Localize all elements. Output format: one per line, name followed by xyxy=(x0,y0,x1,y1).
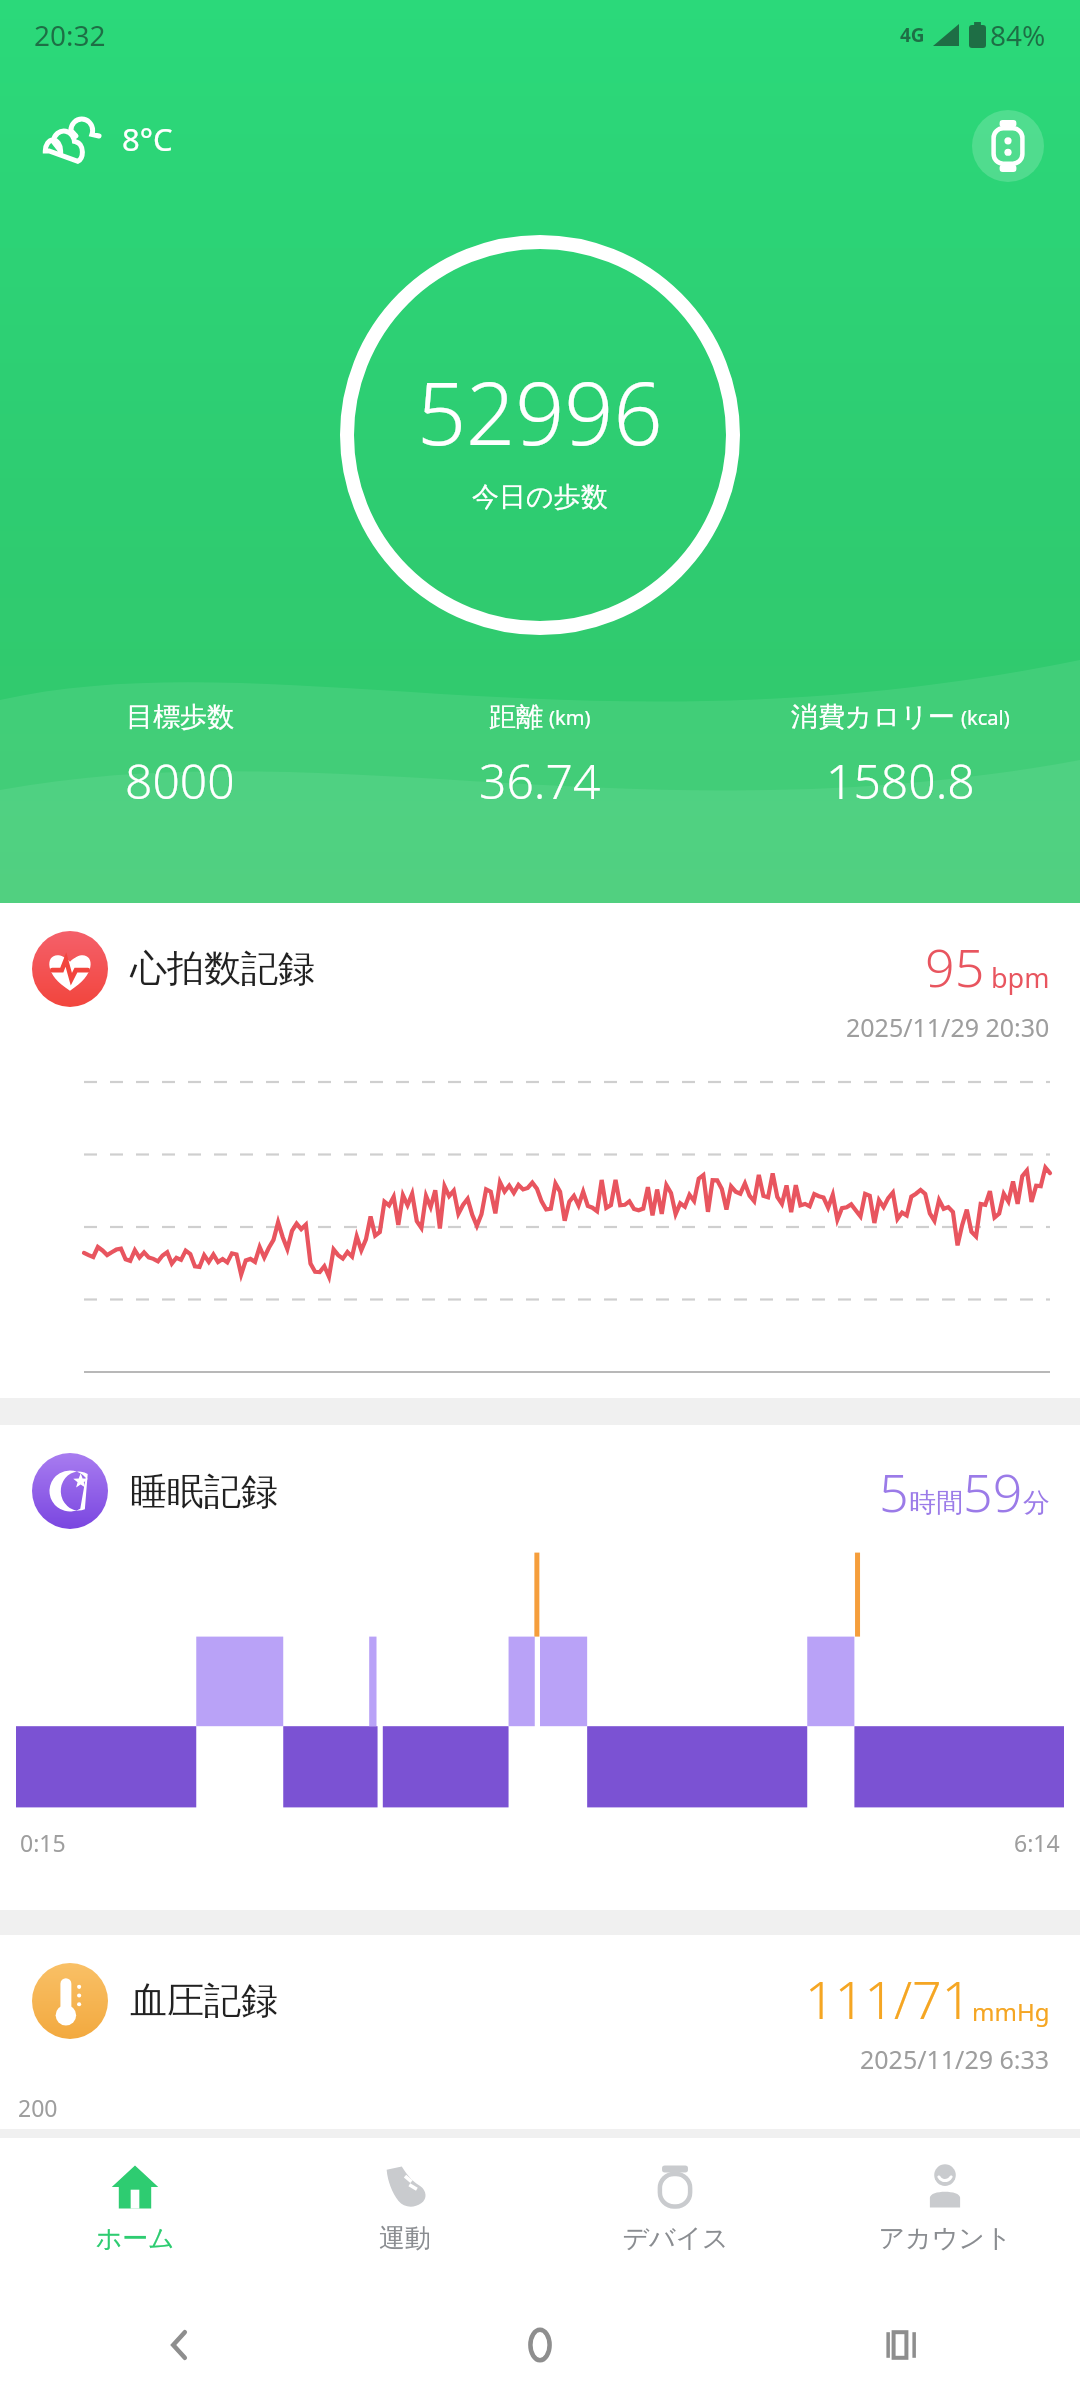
button[interactable]: 心拍数記録 xyxy=(0,903,1080,1398)
staticText: 5 xyxy=(879,1456,909,1527)
button[interactable]: 消費カロリー xyxy=(720,700,1080,813)
staticText: 4G xyxy=(900,22,925,48)
staticText: 2025/11/29 6:33 xyxy=(860,2042,1050,2076)
staticText: 心拍数記録 xyxy=(130,945,315,992)
staticText: 6:14 xyxy=(1014,1827,1060,1858)
staticText: 95 xyxy=(925,931,985,1002)
staticText: 距離 xyxy=(489,700,543,734)
staticText: 0:15 xyxy=(20,1827,66,1858)
staticText: 84% xyxy=(990,16,1046,54)
button[interactable]: 睡眠記録 xyxy=(0,1425,1080,1910)
button[interactable]: Device xyxy=(972,110,1044,182)
staticText: 分 xyxy=(1023,1486,1050,1520)
button[interactable]: 8°C xyxy=(40,110,177,168)
button[interactable]: Recents xyxy=(720,2290,1080,2400)
staticText: bpm xyxy=(991,959,1050,996)
button[interactable]: 血圧記録 xyxy=(0,1935,1080,2129)
button[interactable]: Home xyxy=(360,2290,720,2400)
staticText: mmHg xyxy=(972,1995,1050,2028)
staticText: 200 xyxy=(18,2092,58,2123)
staticText: 59 xyxy=(963,1456,1023,1527)
staticText: 8°C xyxy=(122,118,173,160)
staticText: アカウント xyxy=(878,2222,1012,2255)
staticText: 52996 xyxy=(417,353,663,470)
staticText: 20:32 xyxy=(34,16,106,54)
staticText: 血圧記録 xyxy=(130,1977,278,2024)
staticText: 今日の歩数 xyxy=(472,480,608,514)
button[interactable]: デバイス xyxy=(540,2138,810,2290)
button[interactable]: アカウント xyxy=(810,2138,1080,2290)
staticText: 時間 xyxy=(909,1486,963,1520)
staticText: (km) xyxy=(549,704,591,731)
staticText: 運動 xyxy=(379,2222,431,2255)
button[interactable]: Back xyxy=(0,2290,360,2400)
button[interactable]: 52996 xyxy=(340,235,740,635)
staticText: 111/71 xyxy=(805,1963,972,2034)
button[interactable]: 運動 xyxy=(270,2138,540,2290)
staticText: (kcal) xyxy=(961,704,1010,731)
staticText: 睡眠記録 xyxy=(130,1468,278,1515)
staticText: ホーム xyxy=(95,2222,175,2255)
staticText: 目標歩数 xyxy=(126,700,234,734)
button[interactable]: ホーム xyxy=(0,2138,270,2290)
staticText: 1580.8 xyxy=(826,748,975,813)
staticText: デバイス xyxy=(622,2222,729,2255)
button[interactable]: 距離 xyxy=(360,700,720,813)
staticText: 8000 xyxy=(125,748,235,813)
staticText: 2025/11/29 20:30 xyxy=(846,1010,1050,1044)
staticText: 36.74 xyxy=(479,748,601,813)
button[interactable]: 目標歩数 xyxy=(0,700,360,813)
staticText: 消費カロリー xyxy=(791,700,955,734)
